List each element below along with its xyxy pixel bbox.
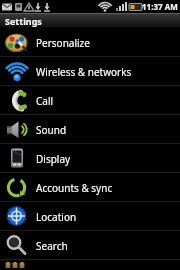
button[interactable]: Wireless & networks [0,57,180,86]
staticText: Display [36,152,71,166]
button[interactable]: Sound [0,115,180,144]
button[interactable]: Personalize [0,28,180,57]
button[interactable]: Call [0,86,180,115]
button[interactable]: Display [0,144,180,173]
staticText: Location [36,210,77,224]
staticText: Search [36,239,68,253]
staticText: Sound [36,123,67,137]
staticText: Wireless & networks [36,65,132,79]
button[interactable]: Location [0,202,180,231]
button[interactable]: Search [0,231,180,260]
staticText: Settings [5,15,42,27]
staticText: Personalize [36,36,90,50]
staticText: Call [36,94,54,108]
button[interactable]: Accounts & sync [0,173,180,202]
staticText: Accounts & sync [36,181,113,195]
staticText: 11:37 AM [142,1,178,12]
button[interactable] [0,260,180,268]
